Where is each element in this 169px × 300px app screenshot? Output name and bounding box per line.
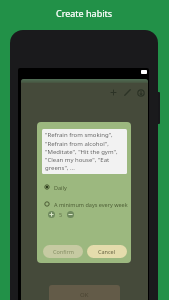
button[interactable]: Add (108, 87, 119, 98)
button[interactable]: Edit (122, 87, 133, 98)
button[interactable]: Confirm (43, 245, 83, 258)
button[interactable]: Cancel (87, 245, 127, 258)
button[interactable]: Decrease (67, 211, 74, 218)
staticText: A minimum days every week (54, 201, 128, 208)
staticText: Cancel (98, 248, 116, 255)
button[interactable]: A minimum days every week (44, 199, 130, 209)
staticText: 5 (59, 211, 63, 218)
staticText: Create habits (56, 7, 113, 19)
staticText: OK (80, 291, 89, 299)
staticText: Daily (54, 184, 67, 191)
button[interactable]: History (135, 87, 146, 98)
staticText: Confirm (53, 248, 74, 255)
button[interactable]: Increase (48, 211, 55, 218)
button[interactable]: Daily (44, 182, 124, 192)
staticText: "Refrain from smoking", "Refrain from al… (45, 131, 124, 171)
